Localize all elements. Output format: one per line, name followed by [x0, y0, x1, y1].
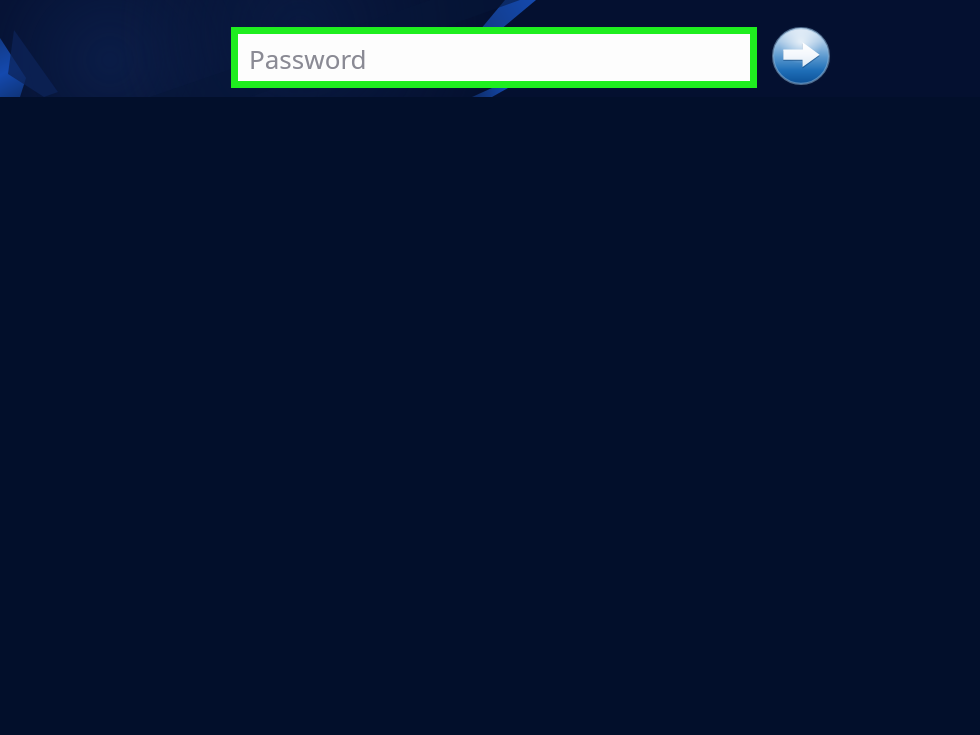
button[interactable]: Submit password — [770, 25, 832, 87]
staticText: Password — [249, 41, 367, 76]
button[interactable]: Password — [231, 27, 757, 88]
